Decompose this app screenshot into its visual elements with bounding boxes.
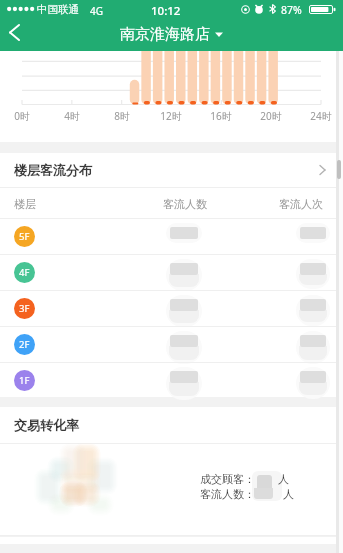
button[interactable]: 4F bbox=[0, 254, 343, 290]
staticText: 4G bbox=[90, 4, 103, 18]
staticText: 1F bbox=[19, 374, 30, 387]
staticText: 8时 bbox=[100, 109, 144, 123]
staticText: 人 bbox=[278, 472, 289, 486]
button[interactable]: 5F bbox=[0, 218, 343, 254]
staticText: 20时 bbox=[249, 109, 293, 123]
staticText: 16时 bbox=[199, 109, 243, 123]
staticText: 客流人数： bbox=[200, 487, 255, 501]
staticText: 客流人次 bbox=[279, 197, 323, 211]
staticText: 4F bbox=[19, 266, 30, 279]
staticText: 0时 bbox=[0, 109, 44, 123]
staticText: 3F bbox=[19, 302, 30, 315]
staticText: 87% bbox=[281, 3, 302, 17]
button[interactable]: 楼层客流分布 bbox=[0, 153, 343, 187]
button[interactable]: 2F bbox=[0, 326, 343, 362]
button[interactable]: 1F bbox=[0, 362, 343, 398]
staticText: 南京淮海路店 bbox=[120, 25, 210, 44]
button[interactable]: 南京淮海路店 bbox=[120, 25, 223, 44]
staticText: 成交顾客： bbox=[200, 472, 255, 486]
staticText: 12时 bbox=[149, 109, 193, 123]
staticText: 客流人数 bbox=[163, 197, 207, 211]
staticText: 楼层 bbox=[14, 197, 36, 211]
staticText: 4时 bbox=[50, 109, 94, 123]
button[interactable]: Back bbox=[0, 18, 40, 51]
staticText: 24时 bbox=[299, 109, 343, 123]
staticText: 10:12 bbox=[151, 3, 181, 19]
staticText: 中国联通 bbox=[37, 3, 79, 16]
button[interactable]: 3F bbox=[0, 290, 343, 326]
staticText: 2F bbox=[19, 338, 30, 351]
staticText: 人 bbox=[283, 487, 294, 501]
staticText: 交易转化率 bbox=[14, 417, 79, 433]
staticText: 5F bbox=[19, 230, 30, 243]
staticText: 楼层客流分布 bbox=[14, 162, 92, 178]
